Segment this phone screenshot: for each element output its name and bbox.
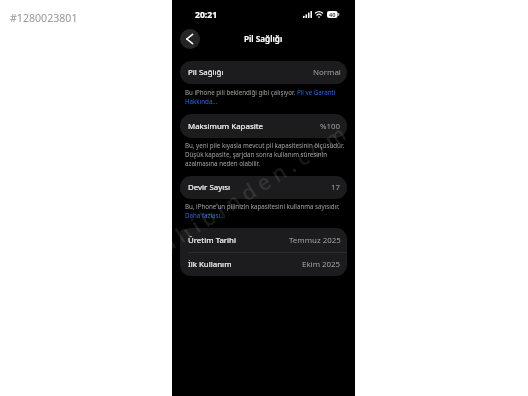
staticText: %100: [320, 121, 341, 132]
staticText: azalmasına neden olabilir.: [185, 159, 260, 167]
staticText: Pil ve Garanti: [297, 88, 336, 96]
staticText: Devir Sayısı: [188, 182, 231, 193]
staticText: Üretim Tarihi: [188, 235, 237, 246]
staticText: #1280023801: [10, 11, 78, 25]
staticText: Bu, iPhone'un pilinizin kapasitesini kul…: [185, 202, 340, 210]
button[interactable]: İlk Kullanım: [180, 253, 347, 276]
staticText: Pil Sağlığı: [188, 67, 224, 78]
staticText: Daha fazlası...: [185, 211, 226, 219]
staticText: Temmuz 2025: [289, 235, 341, 246]
staticText: Maksimum Kapasite: [188, 121, 264, 132]
staticText: Pil Sağlığı: [244, 33, 283, 44]
staticText: Ekim 2025: [302, 259, 341, 270]
staticText: Normal: [313, 67, 341, 78]
staticText: Düşük kapasite, şarjdan sonra kullanım s…: [185, 150, 328, 158]
staticText: Bu, yeni pile kıyasla mevcut pil kapasit…: [185, 141, 345, 149]
staticText: Bu iPhone pili beklendiği gibi çalışıyor…: [185, 88, 297, 96]
staticText: sahibinden.com: [172, 116, 355, 267]
staticText: 17: [331, 182, 341, 193]
staticText: 20:21: [195, 9, 218, 21]
staticText: 40: [329, 11, 336, 18]
button[interactable]: Geri: [180, 29, 200, 49]
button[interactable]: Üretim Tarihi: [180, 228, 347, 252]
staticText: İlk Kullanım: [188, 259, 232, 270]
button[interactable]: Devir Sayısı: [180, 176, 347, 199]
staticText: Hakkında...: [185, 97, 218, 105]
button[interactable]: Pil Sağlığı: [180, 61, 347, 84]
button[interactable]: Maksimum Kapasite: [180, 114, 347, 138]
